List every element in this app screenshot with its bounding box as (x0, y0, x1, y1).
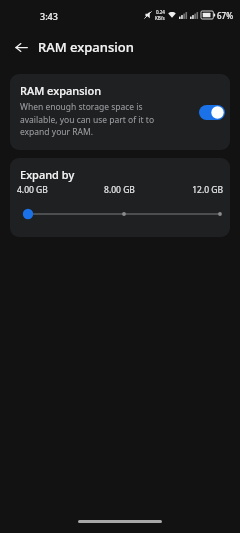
staticText: 4.00 GB (17, 184, 85, 196)
staticText: 12.0 GB (154, 184, 223, 196)
staticText: 67% (217, 10, 233, 21)
button[interactable]: RAM expansion (10, 74, 230, 150)
staticText: 8.00 GB (85, 184, 154, 196)
staticText: Expand by (20, 167, 75, 182)
staticText: RAM expansion (38, 38, 134, 56)
button[interactable]: Back (8, 34, 34, 60)
button[interactable]: Expand by slider (10, 202, 230, 226)
staticText: RAM expansion (20, 83, 102, 98)
staticText: KB/s (155, 15, 165, 21)
staticText: 0.24 (156, 9, 165, 15)
staticText: 3:43 (40, 10, 58, 22)
staticText: When enough storage space is available, … (20, 101, 180, 137)
button[interactable]: RAM expansion toggle (195, 101, 229, 123)
